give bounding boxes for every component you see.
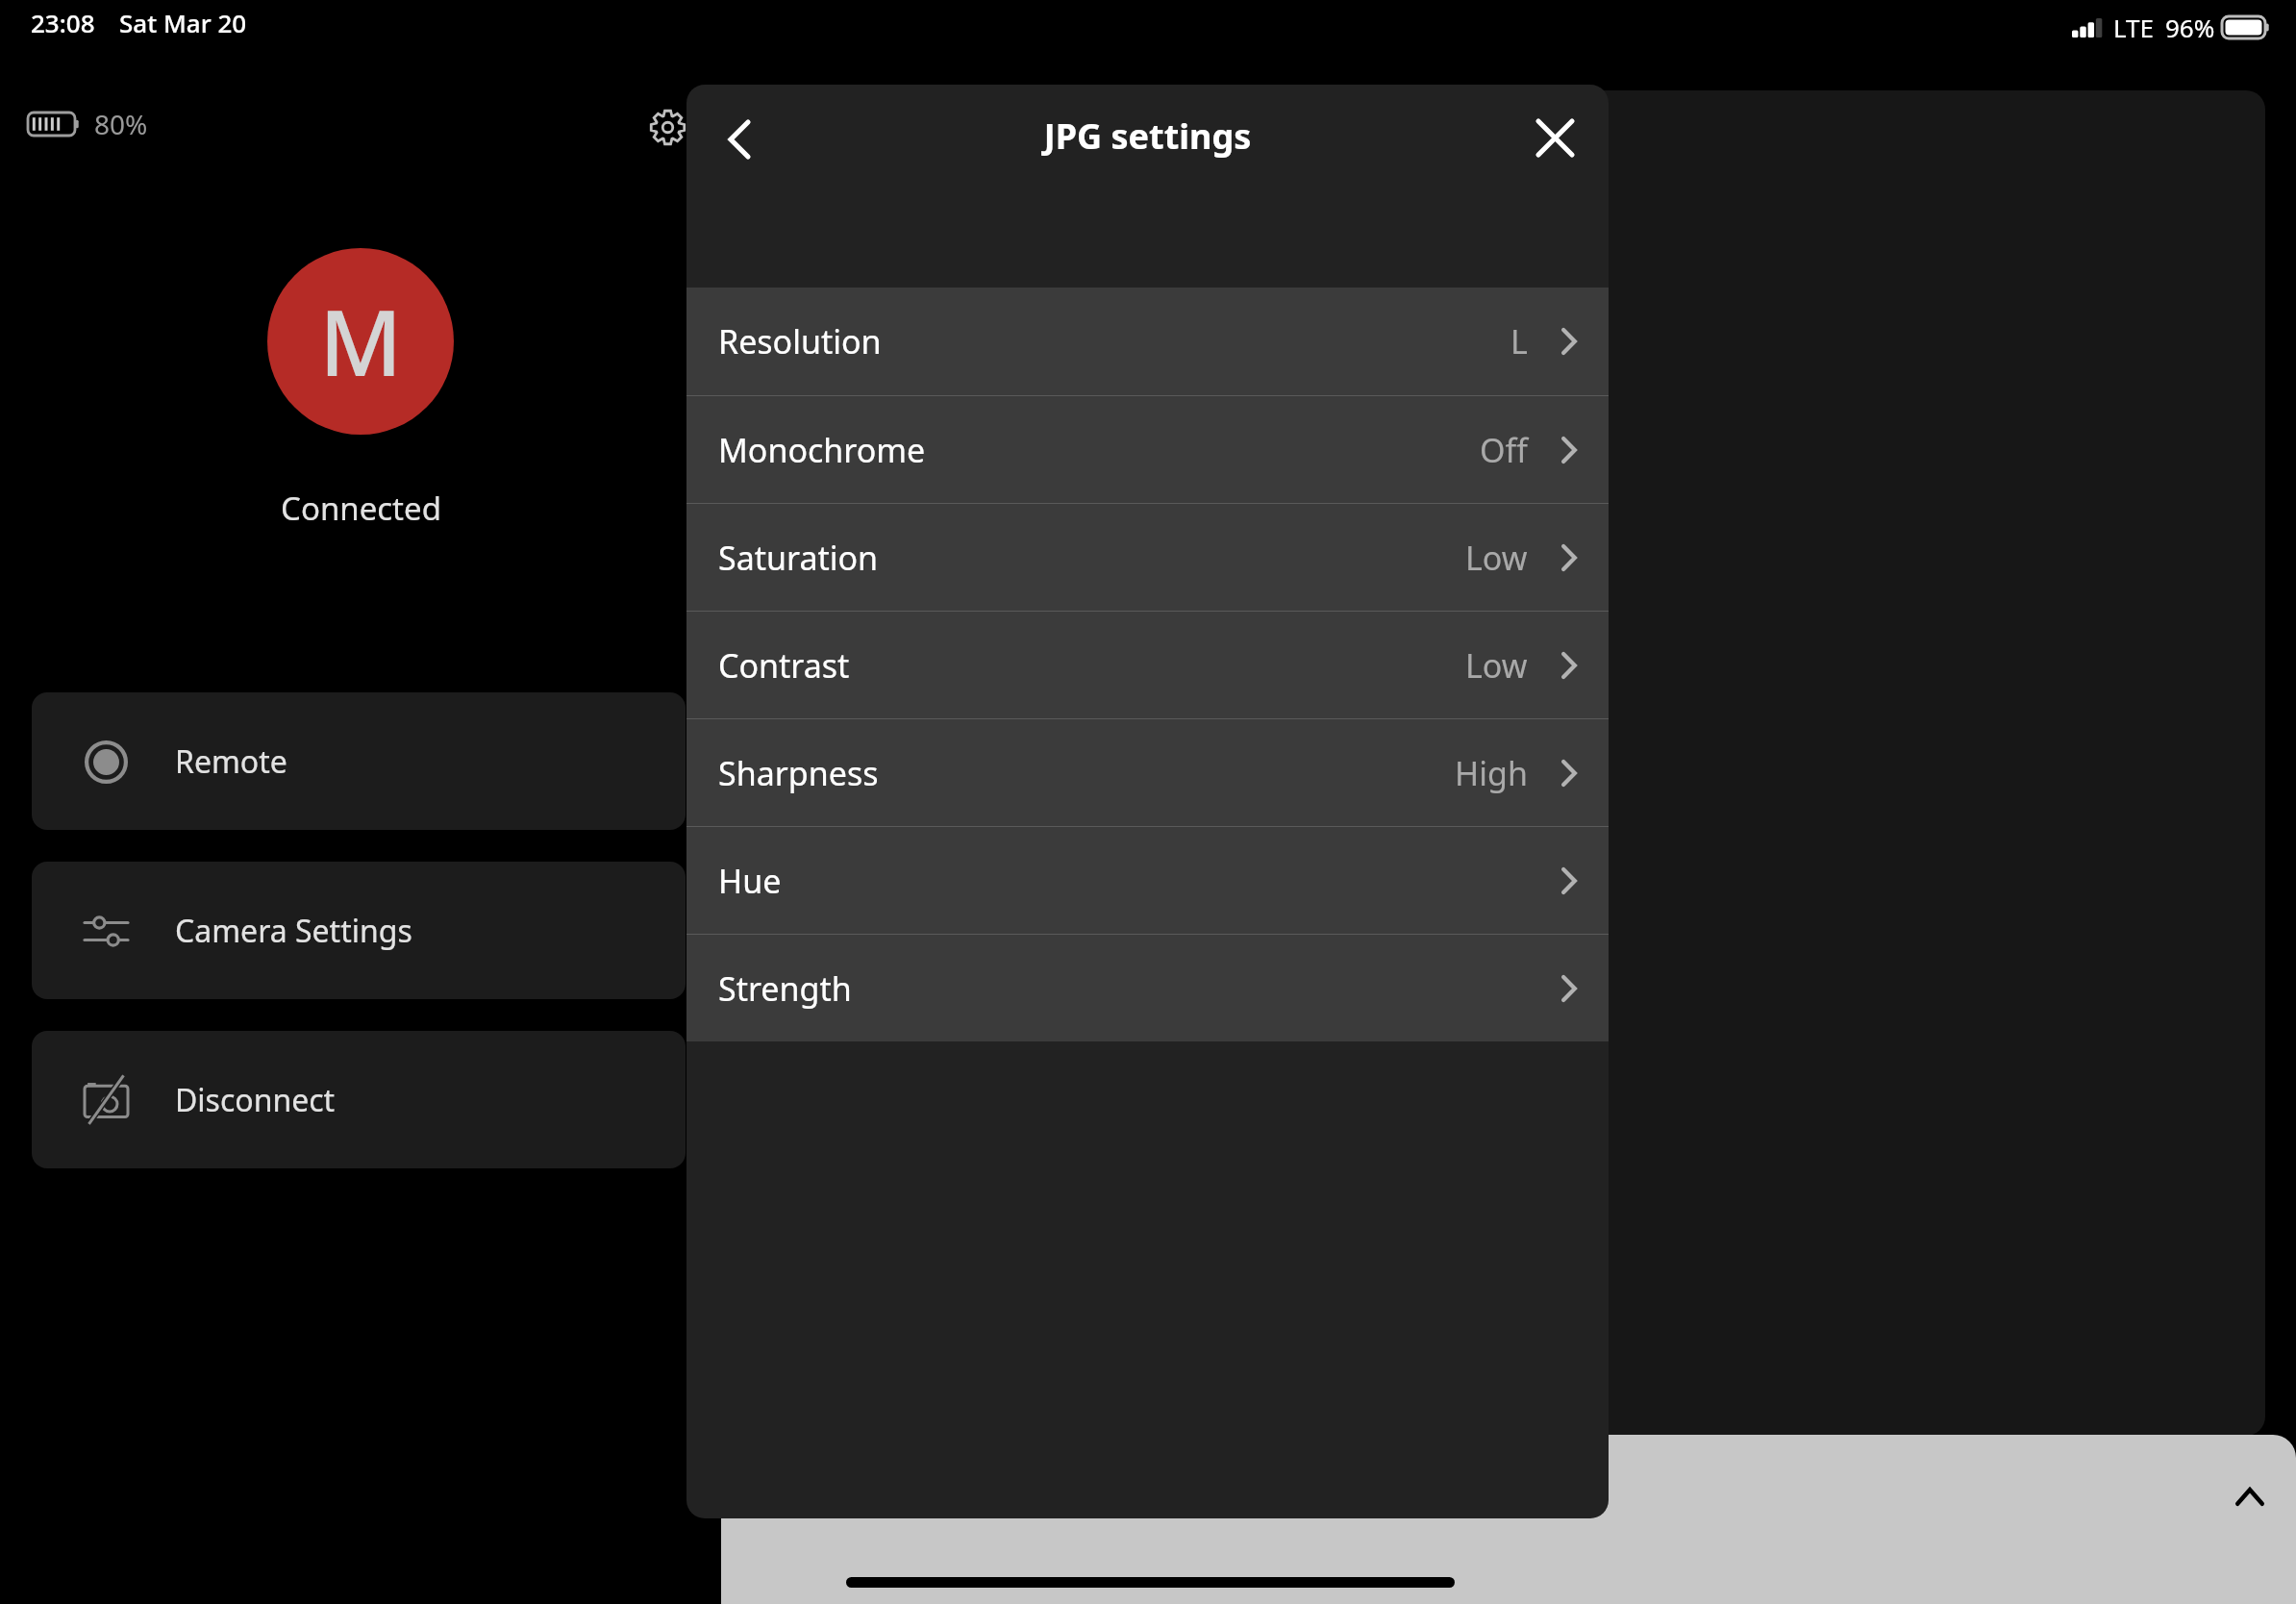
staticText: Resolution [718,319,882,363]
button[interactable]: Camera Settings [32,862,686,999]
staticText: Sat Mar 20 [119,6,247,39]
staticText: Saturation [718,536,879,580]
staticText: Remote [175,740,287,783]
button[interactable]: Disconnect [32,1031,686,1168]
staticText: Contrast [718,643,850,688]
staticText: 80% [94,106,148,142]
staticText: L [1510,319,1528,363]
button[interactable]: Resolution [686,288,1609,395]
staticText: M [319,280,403,403]
staticText: Disconnect [175,1079,336,1121]
button[interactable]: Contrast [686,612,1609,718]
button[interactable]: Remote [32,692,686,830]
staticText: Low [1465,536,1528,580]
button[interactable]: Monochrome [686,396,1609,503]
button[interactable]: Expand [2213,1460,2286,1533]
staticText: JPG settings [686,113,1609,160]
button[interactable]: Close [1516,99,1593,176]
staticText: 96% [2165,11,2215,44]
staticText: Hue [718,859,782,903]
staticText: Camera Settings [175,910,412,952]
button[interactable]: Saturation [686,504,1609,611]
staticText: Off [1480,428,1528,472]
staticText: LTE [2113,11,2155,44]
staticText: Sharpness [718,751,879,795]
staticText: High [1455,751,1528,795]
button[interactable]: Hue [686,827,1609,934]
staticText: Strength [718,966,852,1011]
staticText: 23:08 [31,6,95,39]
button[interactable]: Strength [686,935,1609,1041]
button[interactable]: Sharpness [686,719,1609,826]
staticText: Monochrome [718,428,926,472]
staticText: Connected [0,487,722,530]
staticText: Low [1465,643,1528,688]
button[interactable]: Back [701,101,778,178]
button[interactable]: Settings [636,96,698,158]
